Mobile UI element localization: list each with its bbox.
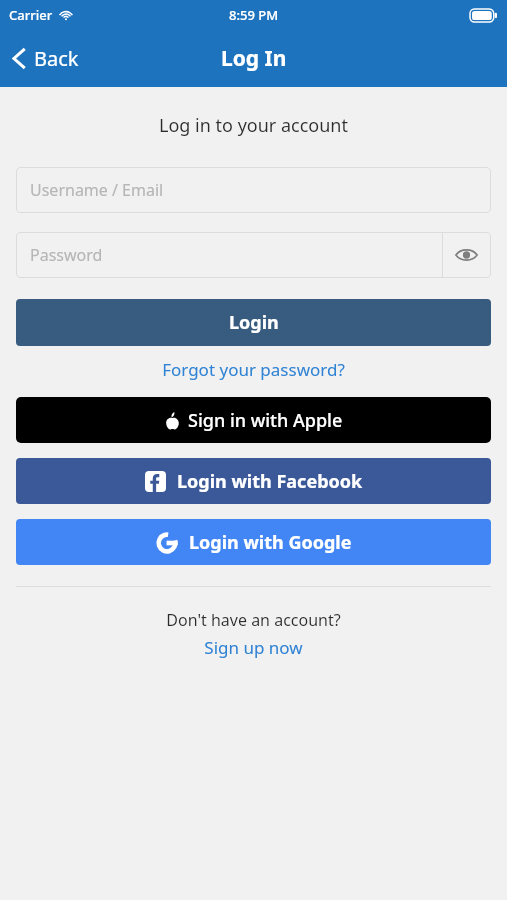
button[interactable]: Login with Google — [16, 519, 491, 565]
button[interactable]: Sign in with Apple — [16, 397, 491, 443]
button[interactable]: Username / Email — [16, 167, 491, 213]
staticText: Login — [229, 310, 279, 335]
staticText: Login with Facebook — [177, 469, 363, 494]
staticText: Don't have an account? — [0, 609, 507, 631]
staticText: Login with Google — [189, 530, 352, 555]
staticText: Sign in with Apple — [188, 408, 343, 433]
button[interactable]: Password — [16, 232, 491, 278]
button[interactable]: Back — [0, 39, 91, 78]
staticText: 8:59 PM — [229, 6, 279, 24]
staticText: Password — [30, 244, 103, 266]
staticText: Carrier — [9, 6, 53, 24]
button[interactable]: Sign up now — [0, 634, 507, 661]
staticText: Back — [34, 45, 79, 72]
button[interactable]: Show password — [442, 232, 491, 278]
staticText: Log In — [221, 44, 287, 73]
staticText: Log in to your account — [0, 113, 507, 138]
button[interactable]: Forgot your password? — [0, 355, 507, 384]
staticText: Username / Email — [30, 179, 164, 201]
button[interactable]: Login — [16, 299, 491, 346]
other: Back — [12, 47, 27, 70]
button[interactable]: Login with Facebook — [16, 458, 491, 504]
